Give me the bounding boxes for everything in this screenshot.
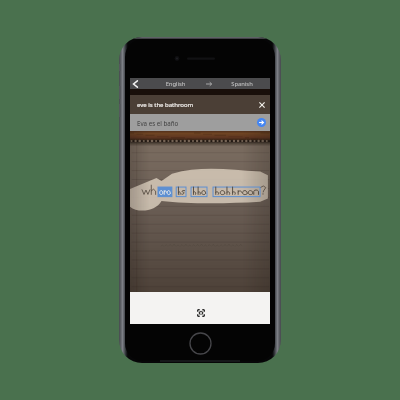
button[interactable]: Eva es el baño bbox=[130, 114, 270, 131]
button[interactable]: Back bbox=[130, 78, 148, 89]
staticText: Eva es el baño bbox=[137, 119, 252, 127]
button[interactable]: Spanish bbox=[214, 80, 270, 88]
button[interactable]: English bbox=[148, 80, 203, 88]
button[interactable]: eve is the bathroom bbox=[130, 95, 270, 114]
button[interactable]: Scan text bbox=[192, 304, 210, 322]
button[interactable]: Open translation bbox=[252, 114, 270, 131]
staticText: eve is the bathroom bbox=[137, 101, 254, 109]
button[interactable]: Clear bbox=[254, 95, 270, 114]
